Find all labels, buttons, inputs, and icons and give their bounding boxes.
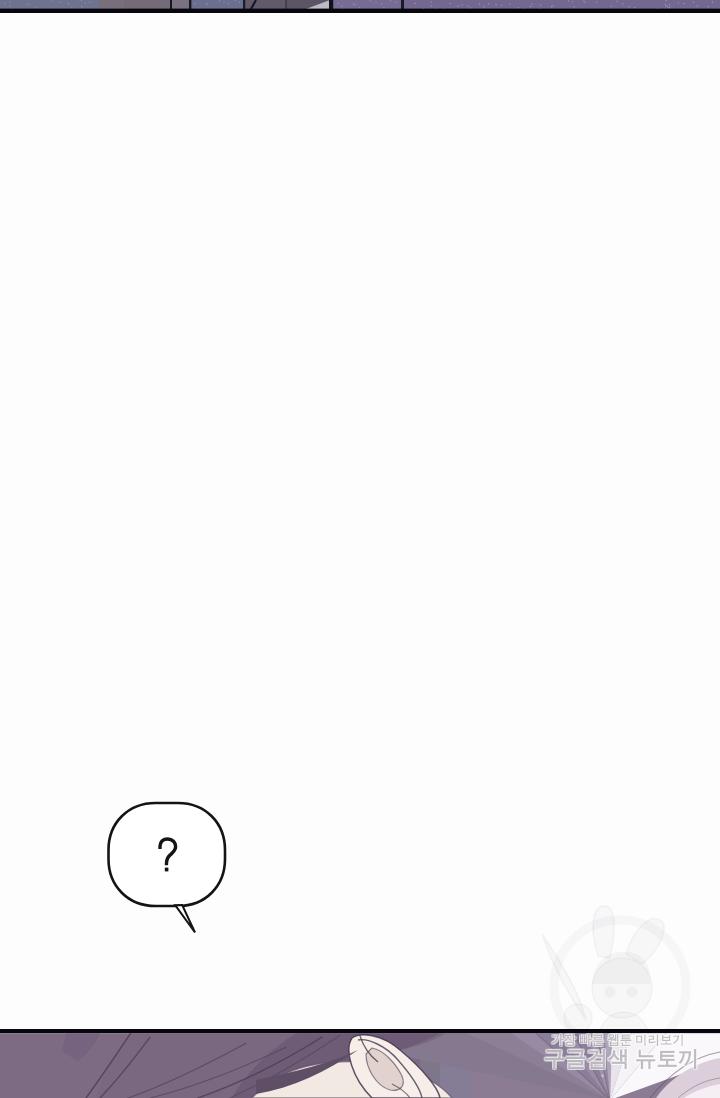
staticText: 가장 빠른 웹툰 미리보기 [551,1030,685,1047]
staticText: 가장 빠른 웹툰 미리보기 [552,1030,686,1047]
staticText: 가장 빠른 웹툰 미리보기 [551,1032,685,1049]
staticText: 가장 빠른 웹툰 미리보기 [552,1031,686,1048]
staticText: 구글검색 뉴토끼 [544,1044,701,1073]
staticText: 구글검색 뉴토끼 [543,1042,700,1071]
staticText: 구글검색 뉴토끼 [544,1042,701,1071]
staticText: 구글검색 뉴토끼 [544,1043,701,1072]
staticText: 가장 빠른 웹툰 미리보기 [550,1032,684,1049]
staticText: 구글검색 뉴토끼 [542,1044,699,1073]
staticText: 가장 빠른 웹툰 미리보기 [552,1032,686,1049]
staticText: 구글검색 뉴토끼 [543,1044,700,1073]
staticText: 구글검색 뉴토끼 [543,1043,700,1072]
staticText: 가장 빠른 웹툰 미리보기 [551,1031,685,1048]
button[interactable]: Webtoon page, tap to show controls [0,0,720,1098]
staticText: 구글검색 뉴토끼 [542,1042,699,1071]
staticText: 가장 빠른 웹툰 미리보기 [550,1031,684,1048]
staticText: 구글검색 뉴토끼 [542,1043,699,1072]
staticText: 가장 빠른 웹툰 미리보기 [550,1030,684,1047]
